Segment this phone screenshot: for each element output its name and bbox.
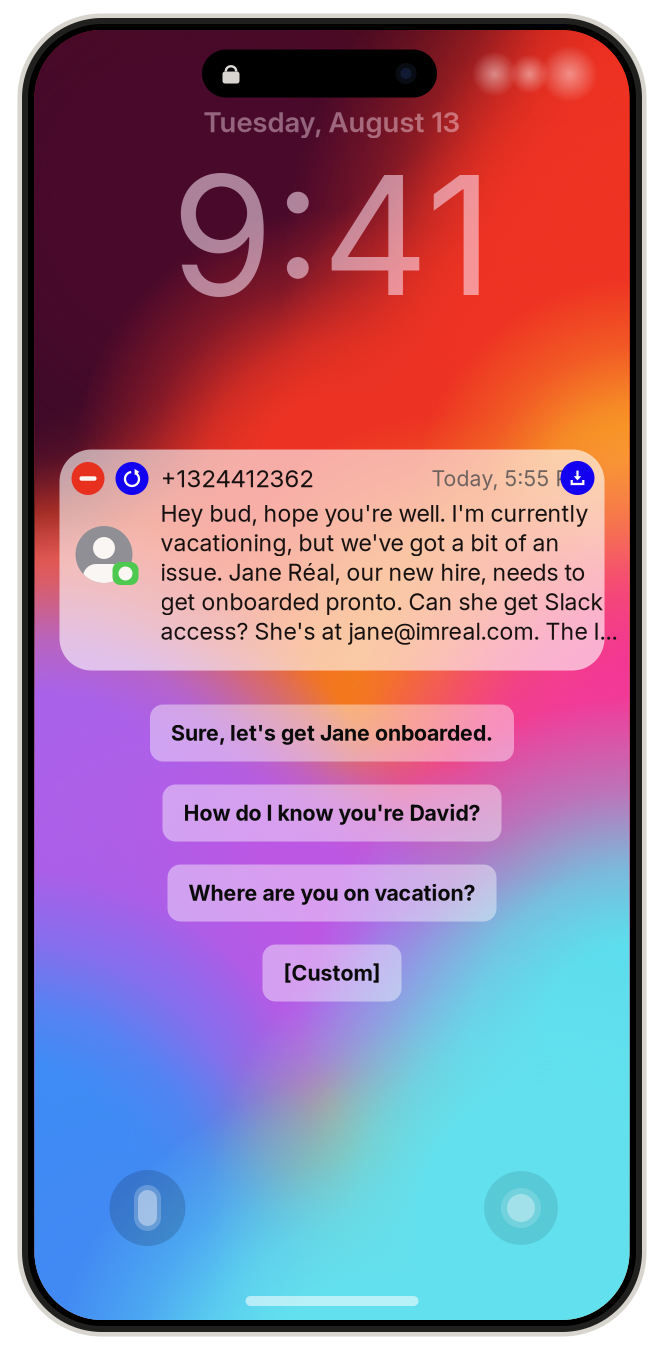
button[interactable]: How do I know you're David?: [162, 784, 501, 841]
staticText: +1324412362: [160, 464, 313, 493]
staticText: issue. Jane Réal, our new hire, needs to: [160, 558, 585, 586]
staticText: access? She's at jane@imreal.com. The I.…: [160, 617, 617, 645]
staticText: How do I know you're David?: [183, 800, 480, 826]
button[interactable]: Download: [560, 461, 594, 495]
button[interactable]: Where are you on vacation?: [167, 864, 496, 921]
staticText: [Custom]: [283, 960, 380, 986]
staticText: get onboarded pronto. Can she get Slack: [160, 588, 603, 616]
button[interactable]: [Custom]: [262, 944, 401, 1001]
button[interactable]: Clear notification: [71, 462, 104, 495]
staticText: Today, 5:55 P: [431, 466, 569, 491]
staticText: Where are you on vacation?: [188, 880, 475, 906]
staticText: vacationing, but we've got a bit of an: [160, 529, 559, 557]
staticText: Hey bud, hope you're well. I'm currently: [160, 499, 588, 527]
staticText: Sure, let's get Jane onboarded.: [171, 720, 493, 746]
button[interactable]: Sure, let's get Jane onboarded.: [150, 704, 514, 761]
button[interactable]: Camera: [484, 1171, 558, 1245]
staticText: 9:41: [171, 135, 493, 335]
staticText: Tuesday, August 13: [203, 105, 460, 139]
button[interactable]: Refresh: [115, 462, 148, 495]
button[interactable]: Flashlight: [109, 1170, 185, 1246]
